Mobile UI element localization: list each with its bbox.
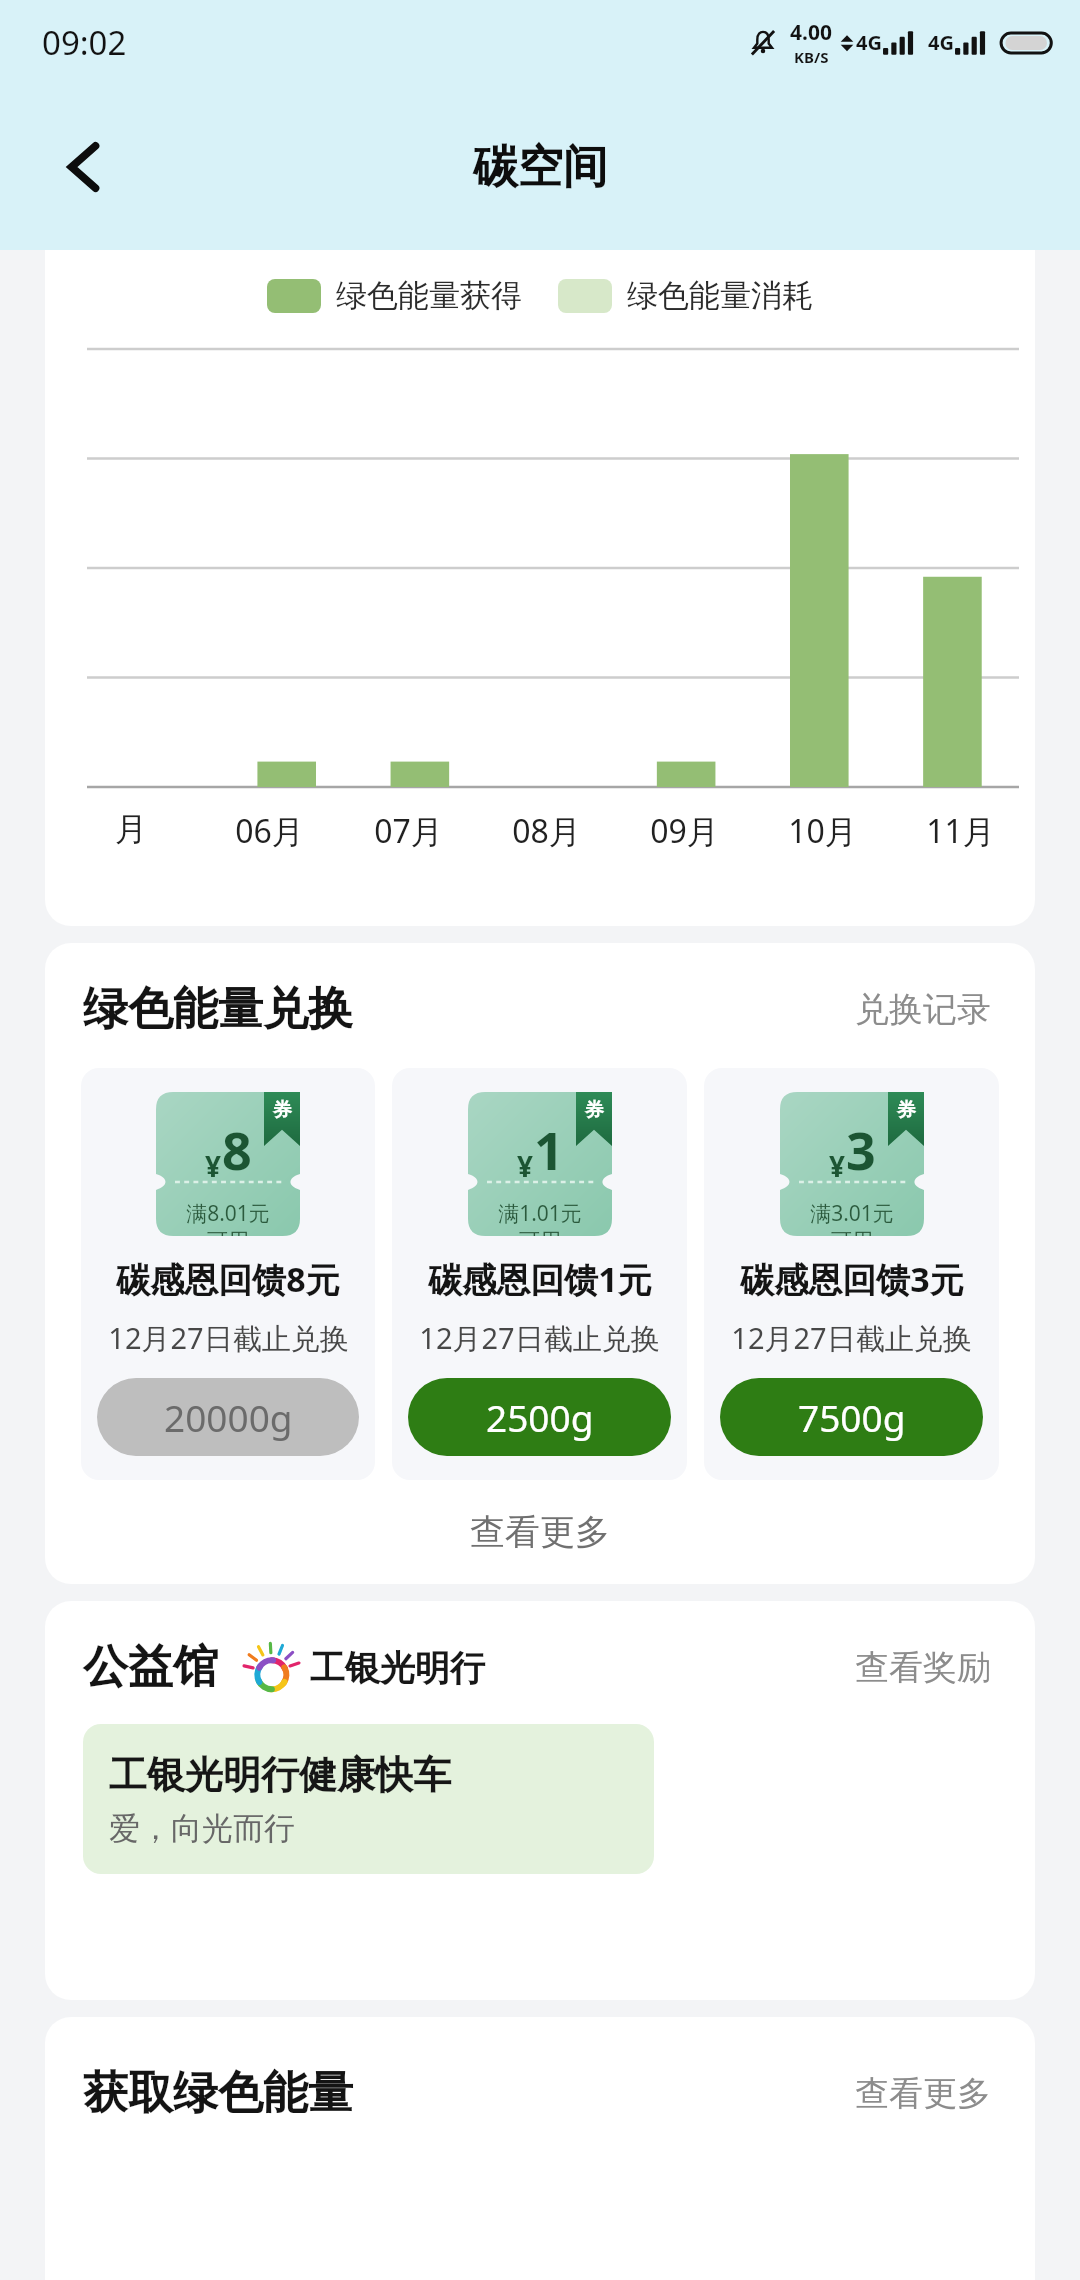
staticText: 10月 <box>788 809 857 853</box>
button[interactable]: Back <box>42 125 126 209</box>
button[interactable]: 查看奖励 <box>849 1640 997 1695</box>
staticText: 4.00 <box>790 18 832 47</box>
staticText: 查看更多 <box>470 1510 610 1554</box>
staticText: 8 <box>222 1114 252 1185</box>
staticText: 工银光明行健康快车 <box>109 1751 451 1799</box>
staticText: 碳空间 <box>473 139 608 196</box>
button[interactable]: ¥ <box>392 1068 687 1480</box>
staticText: 获取绿色能量 <box>83 2065 353 2122</box>
button[interactable]: 查看更多 <box>45 1506 1035 1558</box>
staticText: 碳感恩回馈3元 <box>740 1256 964 1302</box>
staticText: 4G <box>856 29 882 56</box>
staticText: 可用 <box>519 1228 561 1236</box>
button[interactable]: 20000g <box>97 1378 359 1456</box>
button[interactable]: 2500g <box>408 1378 671 1456</box>
staticText: 08月 <box>512 809 581 853</box>
staticText: 09:02 <box>42 20 127 65</box>
staticText: 券 <box>273 1098 292 1122</box>
staticText: 满1.01元 <box>498 1199 582 1228</box>
staticText: 绿色能量兑换 <box>83 981 353 1038</box>
staticText: ¥ <box>517 1147 534 1185</box>
staticText: 11月 <box>926 809 995 853</box>
button[interactable]: 查看更多 <box>849 2066 997 2121</box>
staticText: 7500g <box>798 1392 906 1442</box>
staticText: 06月 <box>235 809 304 853</box>
button[interactable]: ¥ <box>81 1068 375 1480</box>
staticText: 券 <box>585 1098 604 1122</box>
staticText: 20000g <box>164 1392 293 1442</box>
staticText: 12月27日截止兑换 <box>731 1318 972 1358</box>
staticText: ¥ <box>829 1147 846 1185</box>
button[interactable]: 工银光明行健康快车 <box>83 1724 654 1874</box>
staticText: 碳感恩回馈1元 <box>428 1256 652 1302</box>
staticText: 1 <box>534 1114 564 1185</box>
staticText: 可用 <box>207 1228 249 1236</box>
staticText: 满8.01元 <box>186 1199 270 1228</box>
staticText: 月 <box>115 809 147 849</box>
button[interactable]: 兑换记录 <box>849 982 997 1037</box>
staticText: 可用 <box>831 1228 873 1236</box>
staticText: 绿色能量获得 <box>336 276 522 315</box>
staticText: 09月 <box>650 809 719 853</box>
staticText: 绿色能量消耗 <box>627 276 813 315</box>
staticText: 碳感恩回馈8元 <box>116 1256 340 1302</box>
staticText: KB/S <box>794 47 829 67</box>
staticText: ¥ <box>205 1147 222 1185</box>
button[interactable]: 7500g <box>720 1378 983 1456</box>
staticText: 2500g <box>486 1392 594 1442</box>
staticText: 查看更多 <box>855 2072 991 2115</box>
staticText: 12月27日截止兑换 <box>108 1318 349 1358</box>
staticText: 12月27日截止兑换 <box>419 1318 660 1358</box>
staticText: 07月 <box>374 809 443 853</box>
staticText: 满3.01元 <box>810 1199 894 1228</box>
button[interactable]: ¥ <box>704 1068 999 1480</box>
staticText: 公益馆 <box>83 1639 218 1696</box>
staticText: 查看奖励 <box>855 1646 991 1689</box>
staticText: 券 <box>897 1098 916 1122</box>
staticText: 爱，向光而行 <box>109 1809 295 1848</box>
staticText: 工银光明行 <box>310 1646 485 1690</box>
staticText: 4G <box>928 29 954 56</box>
staticText: 3 <box>846 1114 876 1185</box>
staticText: 兑换记录 <box>855 988 991 1031</box>
